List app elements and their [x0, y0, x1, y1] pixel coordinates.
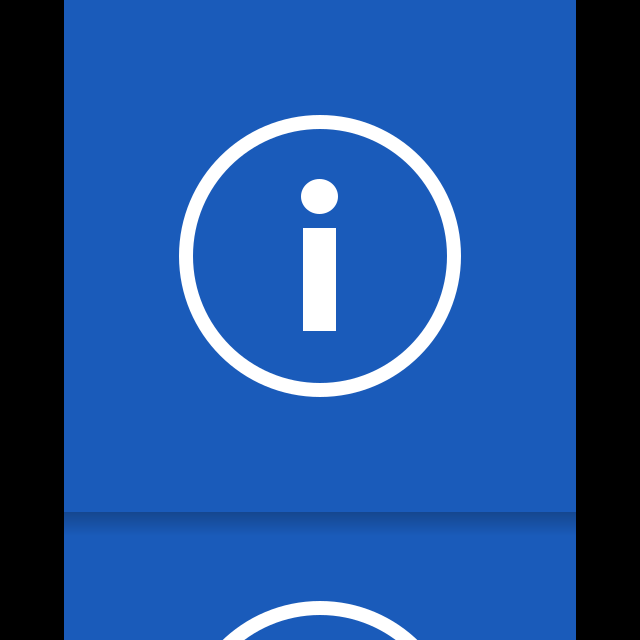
button[interactable]: Info — [0, 0, 640, 640]
